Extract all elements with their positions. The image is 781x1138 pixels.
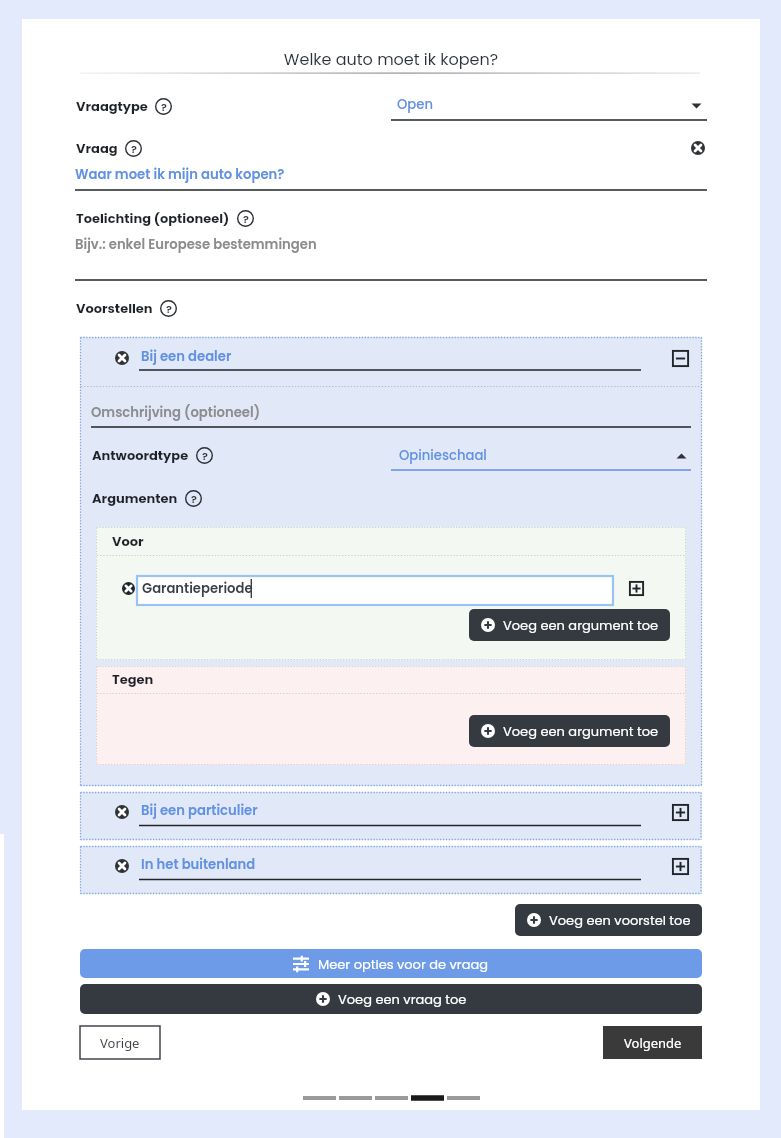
button[interactable]: Verwijder argument bbox=[122, 582, 135, 595]
button[interactable]: Help bbox=[125, 140, 142, 157]
button[interactable]: Voeg een voorstel toe bbox=[515, 904, 702, 936]
staticText: ? bbox=[191, 491, 197, 506]
staticText: Voeg een argument toe bbox=[503, 722, 659, 740]
button[interactable]: Help bbox=[237, 210, 254, 227]
button[interactable]: Voeg een argument toe bbox=[469, 609, 670, 641]
button[interactable]: Help bbox=[160, 300, 177, 317]
staticText: Voorstellen bbox=[76, 299, 153, 317]
button[interactable]: Help bbox=[196, 447, 213, 464]
button[interactable]: Klap voorstel uit bbox=[672, 804, 689, 821]
staticText: Omschrijving (optioneel) bbox=[91, 403, 261, 421]
staticText: Vorige bbox=[100, 1034, 140, 1052]
button[interactable]: Open keuzelijst bbox=[676, 452, 687, 461]
button[interactable]: Volgende bbox=[603, 1026, 702, 1059]
staticText: Antwoordtype bbox=[92, 446, 189, 464]
staticText: Volgende bbox=[624, 1034, 682, 1052]
staticText: Meer opties voor de vraag bbox=[318, 955, 489, 973]
staticText: Waar moet ik mijn auto kopen? bbox=[75, 165, 285, 183]
button[interactable]: Meer opties voor de vraag bbox=[80, 949, 702, 978]
staticText: Vraagtype bbox=[76, 97, 148, 115]
staticText: Voeg een vraag toe bbox=[338, 990, 467, 1008]
staticText: Bijv.: enkel Europese bestemmingen bbox=[75, 235, 317, 253]
staticText: Bij een particulier bbox=[141, 801, 258, 819]
staticText: Vraag bbox=[76, 139, 118, 157]
staticText: Voeg een argument toe bbox=[503, 616, 659, 634]
staticText: Bij een dealer bbox=[141, 347, 232, 365]
staticText: ? bbox=[202, 448, 208, 463]
button[interactable]: Vorige bbox=[80, 1026, 160, 1059]
button[interactable]: Voeg een vraag toe bbox=[80, 984, 702, 1014]
staticText: In het buitenland bbox=[141, 855, 256, 873]
staticText: ? bbox=[131, 141, 137, 156]
staticText: ? bbox=[243, 211, 249, 226]
button[interactable]: Open keuzelijst bbox=[691, 101, 702, 110]
button[interactable]: Verwijder voorstel bbox=[115, 805, 129, 819]
button[interactable]: Help bbox=[185, 490, 202, 507]
button[interactable]: Klap voorstel in bbox=[672, 350, 689, 367]
staticText: Welke auto moet ik kopen? bbox=[22, 48, 760, 70]
staticText: ? bbox=[166, 301, 172, 316]
button[interactable]: Verwijder voorstel bbox=[115, 859, 129, 873]
staticText: Argumenten bbox=[92, 489, 178, 507]
staticText: Open bbox=[397, 95, 433, 113]
button[interactable]: Help bbox=[155, 98, 172, 115]
button[interactable]: Wis vraag bbox=[691, 141, 705, 155]
staticText: Voor bbox=[112, 532, 144, 550]
button[interactable]: Voeg een argument toe bbox=[469, 715, 670, 747]
staticText: Voeg een voorstel toe bbox=[549, 911, 691, 929]
button[interactable]: Klap voorstel uit bbox=[672, 858, 689, 875]
button[interactable]: Verwijder voorstel bbox=[115, 351, 129, 365]
button[interactable]: Voeg argument toe bbox=[629, 581, 644, 596]
staticText: Garantieperiode bbox=[142, 579, 253, 597]
staticText: Tegen bbox=[112, 670, 154, 688]
staticText: Opinieschaal bbox=[399, 446, 487, 464]
staticText: Toelichting (optioneel) bbox=[76, 209, 230, 227]
staticText: ? bbox=[161, 99, 167, 114]
